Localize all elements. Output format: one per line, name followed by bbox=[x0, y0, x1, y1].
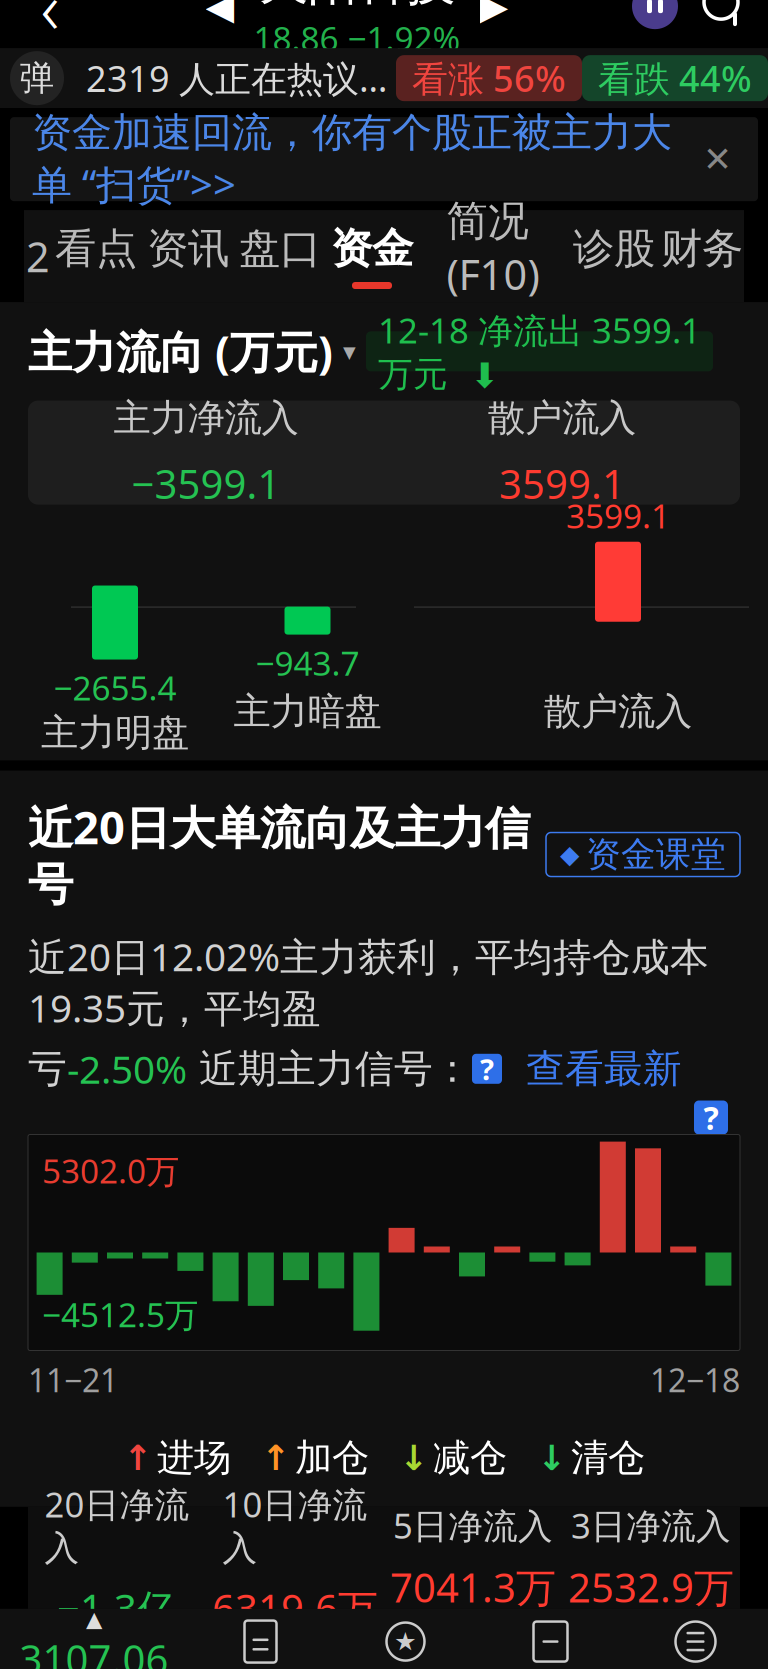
staticText: 6319.6万 bbox=[212, 1582, 378, 1635]
staticText: 天阳科技 bbox=[259, 0, 455, 13]
button[interactable]: 删自选 bbox=[478, 1609, 623, 1669]
button[interactable]: 返回 bbox=[8, 0, 92, 47]
staticText: 资金 bbox=[331, 223, 413, 274]
button[interactable]: 创业板指数 bbox=[0, 1609, 188, 1669]
staticText: 18.86 −1.92% bbox=[253, 16, 460, 60]
button[interactable]: ★ bbox=[333, 1609, 478, 1669]
staticText: ? bbox=[703, 1096, 718, 1139]
button[interactable]: 资金加速回流，你有个股正被主力大单 “扫货”>> bbox=[0, 108, 768, 210]
staticText: ◆ bbox=[560, 840, 579, 869]
staticText: 诊股 bbox=[573, 223, 655, 274]
staticText: 近20日大单流向及主力信号 bbox=[28, 797, 530, 912]
staticText: 3107.06 bbox=[19, 1632, 168, 1669]
staticText: −943.7 bbox=[255, 641, 359, 685]
staticText: 10日净流入 bbox=[222, 1481, 367, 1570]
staticText: 3599.1 bbox=[499, 457, 625, 510]
staticText: 财务 bbox=[661, 223, 743, 274]
staticText: 散户流入 bbox=[544, 689, 692, 735]
staticText: 看跌 44% bbox=[598, 54, 752, 102]
staticText: 主力暗盘 bbox=[233, 689, 381, 735]
staticText: ▲ bbox=[86, 1607, 102, 1631]
staticText: 3599.1 bbox=[566, 493, 670, 538]
staticText: ✕ bbox=[703, 139, 732, 179]
staticText: 12−18 bbox=[650, 1358, 740, 1401]
button[interactable]: 下单 bbox=[188, 1609, 333, 1669]
button[interactable]: 诊股 bbox=[568, 210, 660, 302]
button[interactable]: 帮助 bbox=[694, 1100, 728, 1134]
staticText: 加仓 bbox=[295, 1435, 369, 1481]
button[interactable]: 弹 bbox=[0, 48, 768, 108]
staticText: 主力流向 (万元) bbox=[28, 322, 333, 380]
staticText: 看点 bbox=[55, 223, 137, 274]
staticText: 5日净流入 bbox=[393, 1502, 553, 1548]
staticText: 减仓 bbox=[433, 1435, 507, 1481]
staticText: 2 bbox=[26, 229, 50, 284]
staticText: ‹ bbox=[40, 0, 59, 54]
button[interactable]: 搜索 bbox=[688, 0, 760, 47]
staticText: 资金加速回流，你有个股正被主力大单 “扫货”>> bbox=[32, 108, 672, 210]
staticText: ↓ bbox=[399, 1438, 428, 1478]
staticText: 清仓 bbox=[571, 1435, 645, 1481]
staticText: ↑ bbox=[123, 1438, 152, 1478]
staticText: 盘口 bbox=[239, 223, 321, 274]
button[interactable]: 查看最新 bbox=[502, 1045, 682, 1093]
staticText: 进场 bbox=[157, 1435, 231, 1481]
staticText: 2532.9万 bbox=[568, 1560, 734, 1613]
button[interactable]: 财务 bbox=[660, 210, 744, 302]
staticText: 亏 bbox=[28, 1045, 67, 1093]
button[interactable]: ◆ bbox=[546, 832, 740, 876]
button[interactable]: 盘口 bbox=[234, 210, 326, 302]
staticText: 简况(F10) bbox=[446, 196, 539, 301]
staticText: 主力净流入 bbox=[113, 395, 298, 441]
button[interactable]: 资金 bbox=[326, 210, 418, 302]
staticText: 近期主力信号： bbox=[187, 1045, 472, 1093]
staticText: 2319 人正在热议… bbox=[86, 54, 387, 102]
staticText: ? bbox=[480, 1049, 494, 1088]
staticText: 散户流入 bbox=[488, 395, 636, 441]
staticText: 看涨 56% bbox=[412, 54, 566, 102]
staticText: 3日净流入 bbox=[571, 1502, 731, 1548]
staticText: −1.3亿 bbox=[57, 1582, 177, 1635]
staticText: −2655.4 bbox=[53, 665, 176, 710]
staticText: 资金课堂 bbox=[586, 833, 726, 876]
button[interactable]: 智能助手 bbox=[622, 0, 688, 47]
staticText: 查看最新 bbox=[502, 1045, 682, 1093]
staticText: 5302.0万 bbox=[42, 1148, 179, 1193]
button[interactable]: 上一只股票 bbox=[191, 0, 249, 47]
button[interactable]: 资讯 bbox=[142, 210, 234, 302]
button[interactable]: 简况(F10) bbox=[418, 210, 568, 302]
staticText: 近20日12.02%主力获利，平均持仓成本19.35元，平均盈 bbox=[28, 930, 709, 1033]
staticText: ▶ bbox=[479, 0, 508, 27]
staticText: −3599.1 bbox=[131, 457, 280, 510]
staticText: 7041.3万 bbox=[390, 1560, 556, 1613]
staticText: 弹 bbox=[19, 57, 54, 99]
staticText: ↓ bbox=[537, 1438, 566, 1478]
staticText: 资讯 bbox=[147, 223, 229, 274]
staticText: 12-18 净流出 3599.1 万元 ⬇ bbox=[378, 307, 701, 396]
staticText: 主力明盘 bbox=[41, 710, 189, 756]
button[interactable]: 看点 bbox=[50, 210, 142, 302]
staticText: -2.50% bbox=[67, 1043, 187, 1094]
staticText: ★ bbox=[394, 1627, 417, 1656]
staticText: ↑ bbox=[261, 1438, 290, 1478]
staticText: 20日净流入 bbox=[44, 1481, 189, 1570]
staticText: ▾ bbox=[343, 337, 356, 366]
button[interactable]: 下一只股票 bbox=[465, 0, 523, 47]
staticText: 11−21 bbox=[28, 1358, 118, 1401]
staticText: −4512.5万 bbox=[42, 1292, 198, 1336]
staticText: ◀ bbox=[205, 0, 234, 27]
button[interactable]: 功能 bbox=[623, 1609, 768, 1669]
